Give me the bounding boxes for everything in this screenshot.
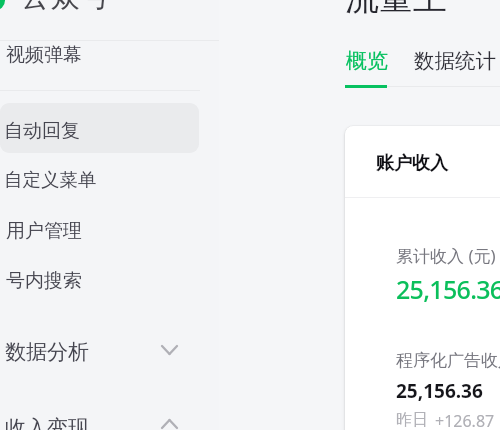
other: 展开数据分析 xyxy=(162,346,177,354)
staticText: 视频弹幕 xyxy=(6,43,82,67)
staticText: 自动回复 xyxy=(4,119,80,143)
staticText: 概览 xyxy=(346,48,388,74)
staticText: 用户管理 xyxy=(6,219,82,243)
staticText: 数据分析 xyxy=(5,339,89,365)
button[interactable]: 概览 xyxy=(339,44,394,88)
button[interactable]: 视频弹幕 xyxy=(0,41,201,90)
button[interactable]: 自动回复 xyxy=(0,103,199,153)
staticText: +126.87 xyxy=(435,410,495,430)
button[interactable]: 数据统计 xyxy=(408,44,498,88)
staticText: 25,156.36 xyxy=(396,378,483,404)
button[interactable]: 号内搜索 xyxy=(0,255,201,305)
staticText: 25,156.36 xyxy=(396,272,500,306)
staticText: 收入变现 xyxy=(5,415,89,430)
staticText: 账户收入 xyxy=(376,152,448,175)
button[interactable]: 数据分析 xyxy=(0,326,201,374)
other: 收起收入变现 xyxy=(162,420,177,428)
staticText: 自定义菜单 xyxy=(4,168,97,191)
button[interactable]: 收入变现 xyxy=(0,402,201,430)
button[interactable]: 自定义菜单 xyxy=(0,154,201,204)
staticText: 昨日 xyxy=(396,410,428,430)
staticText: 号内搜索 xyxy=(6,269,82,293)
button[interactable]: 用户管理 xyxy=(0,205,201,255)
other: 公众号 logo xyxy=(0,0,5,10)
staticText: 程序化广告收入 xyxy=(396,350,500,371)
staticText: 累计收入 (元) xyxy=(396,244,496,267)
staticText: 公众号 xyxy=(20,0,110,15)
staticText: 流量主 xyxy=(345,0,447,19)
staticText: 数据统计 xyxy=(414,48,496,74)
